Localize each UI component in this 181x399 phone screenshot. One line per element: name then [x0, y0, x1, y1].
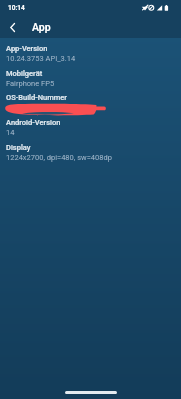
staticText: Mobilgerät — [6, 69, 43, 78]
button[interactable]: OS-Build-Nummer — [0, 93, 181, 118]
button[interactable]: Display — [0, 143, 181, 168]
staticText: App-Version — [6, 44, 48, 53]
staticText: 14 — [6, 128, 15, 137]
staticText: Fairphone FP5 — [6, 79, 55, 88]
staticText: Display — [6, 143, 31, 152]
button[interactable]: Mobilgerät — [0, 69, 181, 94]
button[interactable]: Back — [0, 15, 24, 39]
button[interactable]: App-Version — [0, 44, 181, 69]
staticText: 10:14 — [8, 4, 25, 12]
staticText: App — [32, 21, 51, 33]
staticText: 10.24.3753 API_3.14 — [6, 54, 76, 63]
staticText: 1224x2700, dpi=480, sw=408dp — [6, 153, 112, 162]
staticText: OS-Build-Nummer — [6, 93, 67, 102]
staticText: Android-Version — [6, 118, 61, 127]
button[interactable]: Android-Version — [0, 118, 181, 143]
